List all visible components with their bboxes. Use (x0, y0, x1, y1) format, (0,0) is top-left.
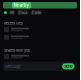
staticText: Send (64, 64, 72, 69)
button[interactable]: Code (30, 10, 42, 15)
button[interactable]: Nearby (3, 2, 77, 8)
staticText: Docs (18, 10, 27, 15)
button[interactable]: All (9, 10, 15, 15)
button[interactable] (4, 53, 76, 60)
button[interactable] (4, 33, 76, 41)
button[interactable]: Docs (17, 10, 29, 15)
staticText: Shared with you (4, 48, 30, 53)
staticText: All (10, 10, 14, 15)
staticText: Nearby (14, 3, 30, 8)
staticText: Recent files (4, 21, 23, 26)
staticText: Message (5, 64, 20, 69)
button[interactable] (4, 26, 76, 33)
staticText: Code (32, 10, 41, 15)
button[interactable]: Send (62, 63, 74, 69)
